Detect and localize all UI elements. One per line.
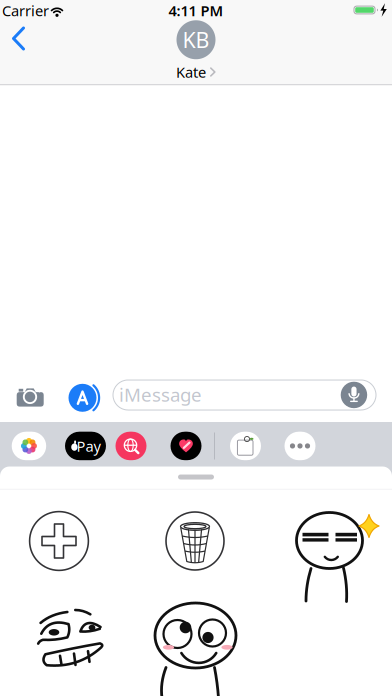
button[interactable]: Images [115, 432, 146, 460]
button[interactable]: Add sticker [27, 509, 91, 573]
staticText: 4:11 PM [168, 1, 223, 20]
button[interactable]: iMessage apps [67, 381, 103, 415]
button[interactable]: Grinning sticker [10, 595, 106, 691]
button[interactable]: Camera [16, 388, 44, 408]
staticText: iMessage [119, 382, 202, 407]
button[interactable]: Dictate [341, 382, 367, 408]
staticText: KB [182, 26, 209, 54]
staticText: Pay [76, 436, 100, 456]
button[interactable]: Photos [12, 432, 46, 460]
button[interactable]: Sticker pack [230, 432, 261, 460]
button[interactable]: Smug sticker [285, 495, 381, 607]
button[interactable]: More apps [284, 432, 315, 460]
button[interactable]: iMessage text field [112, 379, 376, 410]
staticText: Kate [176, 62, 206, 82]
button[interactable]: Back [10, 26, 27, 51]
button[interactable]: Delete sticker [163, 509, 227, 573]
button[interactable]: Apple Pay [65, 432, 106, 460]
staticText: Carrier [2, 1, 49, 20]
button[interactable]: Looking up sticker [140, 590, 250, 696]
button[interactable]: Digital Touch [170, 432, 201, 460]
button[interactable]: KB [176, 20, 216, 82]
